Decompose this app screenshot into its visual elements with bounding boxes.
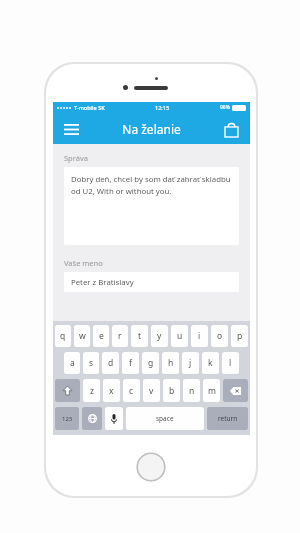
button[interactable]: Home (136, 452, 166, 482)
staticText: d (108, 357, 114, 369)
staticText: u (177, 330, 183, 342)
button[interactable]: r (112, 325, 128, 347)
staticText: j (189, 357, 192, 369)
button[interactable]: s (83, 352, 99, 374)
staticText: z (90, 385, 94, 397)
staticText: Dobrý deň, chcel by som dať zahrať sklad… (71, 174, 234, 196)
button[interactable]: p (231, 325, 248, 347)
staticText: 12:15 (155, 104, 170, 111)
button[interactable]: g (142, 352, 159, 374)
button[interactable]: x (103, 379, 120, 402)
staticText: 123 (62, 415, 73, 423)
staticText: b (169, 385, 175, 397)
button[interactable]: Backspace (223, 379, 248, 402)
staticText: p (237, 330, 243, 342)
button[interactable]: Menu (59, 117, 83, 141)
button[interactable]: Dobrý deň, chcel by som dať zahrať sklad… (64, 167, 239, 245)
button[interactable]: h (162, 352, 179, 374)
button[interactable]: v (143, 379, 160, 402)
staticText: i (198, 330, 201, 342)
button[interactable]: d (102, 352, 119, 374)
staticText: h (168, 357, 174, 369)
staticText: T-mobile SK (74, 104, 105, 111)
button[interactable]: j (182, 352, 199, 374)
staticText: t (138, 330, 142, 342)
staticText: Správa (64, 153, 88, 163)
staticText: Vaše meno (64, 258, 103, 268)
button[interactable]: k (202, 352, 219, 374)
button[interactable]: l (222, 352, 239, 374)
staticText: space (156, 414, 174, 423)
button[interactable]: Dictate (105, 407, 123, 430)
staticText: Peter z Bratislavy (71, 277, 134, 288)
button[interactable]: o (211, 325, 228, 347)
button[interactable]: m (203, 379, 220, 402)
button[interactable]: n (183, 379, 200, 402)
button[interactable]: return (207, 407, 248, 430)
button[interactable]: Peter z Bratislavy (64, 272, 239, 292)
staticText: return (218, 414, 238, 423)
button[interactable]: u (171, 325, 188, 347)
staticText: o (217, 330, 223, 342)
button[interactable]: a (64, 352, 80, 374)
staticText: s (89, 357, 94, 369)
staticText: q (60, 330, 66, 342)
staticText: n (189, 385, 195, 397)
button[interactable]: q (55, 325, 71, 347)
button[interactable]: b (163, 379, 180, 402)
staticText: v (149, 385, 154, 397)
staticText: l (229, 357, 232, 369)
button[interactable]: 123 (55, 407, 79, 430)
button[interactable]: z (83, 379, 100, 402)
staticText: Na želanie (122, 121, 181, 137)
button[interactable]: e (93, 325, 109, 347)
staticText: c (129, 385, 134, 397)
staticText: w (79, 330, 86, 342)
button[interactable]: f (122, 352, 139, 374)
staticText: a (70, 357, 75, 369)
button[interactable]: y (151, 325, 168, 347)
staticText: k (208, 357, 213, 369)
staticText: 96% (220, 104, 230, 111)
button[interactable]: Cart (219, 117, 243, 141)
button[interactable]: Emoji (82, 407, 102, 430)
staticText: y (157, 330, 162, 342)
staticText: r (118, 330, 122, 342)
button[interactable]: c (123, 379, 140, 402)
button[interactable]: t (131, 325, 148, 347)
button[interactable]: w (74, 325, 90, 347)
staticText: x (109, 385, 114, 397)
staticText: g (148, 357, 154, 369)
staticText: m (208, 385, 216, 397)
button[interactable]: i (191, 325, 208, 347)
staticText: f (129, 357, 132, 369)
staticText: e (99, 330, 104, 342)
button[interactable]: Shift (55, 379, 80, 402)
button[interactable]: space (126, 407, 204, 430)
